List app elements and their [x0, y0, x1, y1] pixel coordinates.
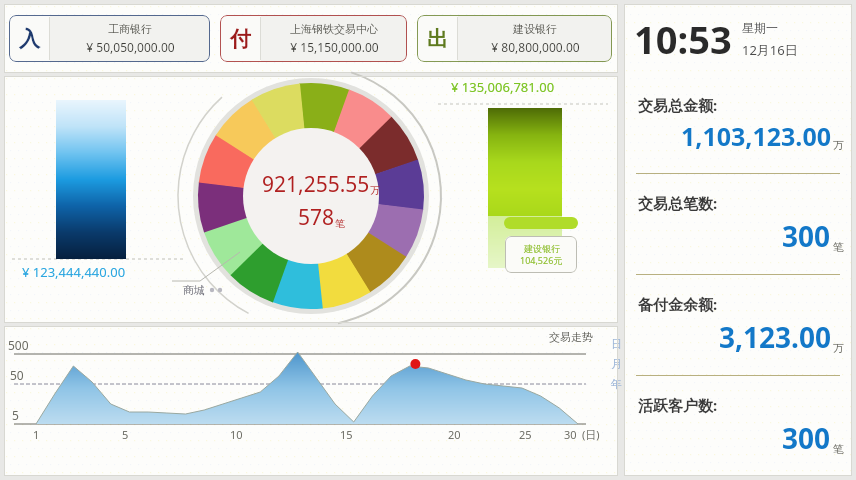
button[interactable]: 建设银行: [505, 236, 577, 273]
staticText: 10:53: [634, 13, 732, 65]
staticText: 3,123.00: [719, 318, 831, 356]
staticText: 笔: [833, 442, 844, 456]
staticText: ¥ 123,444,440.00: [22, 263, 126, 281]
staticText: ¥ 15,150,000.00: [290, 39, 379, 55]
staticText: 付: [230, 26, 251, 52]
button[interactable]: 月: [609, 354, 623, 374]
button[interactable]: 活跃客户数:: [624, 376, 852, 476]
staticText: 10: [230, 427, 243, 442]
button[interactable]: 出: [417, 15, 612, 62]
staticText: 入: [19, 26, 40, 52]
staticText: 50: [10, 367, 24, 383]
staticText: 30: [564, 427, 577, 442]
staticText: 5: [122, 427, 129, 442]
staticText: 500: [8, 337, 29, 353]
staticText: (日): [582, 427, 600, 442]
staticText: 300: [782, 419, 831, 457]
staticText: 交易走势: [549, 330, 593, 344]
staticText: 上海钢铁交易中心: [290, 22, 378, 36]
staticText: 建设银行: [524, 243, 560, 254]
button[interactable]: 交易总笔数:: [624, 174, 852, 274]
button[interactable]: 付: [220, 15, 407, 62]
staticText: 万: [370, 184, 380, 197]
staticText: 活跃客户数:: [638, 395, 718, 415]
staticText: 交易总笔数:: [638, 193, 718, 213]
staticText: 交易总金额:: [638, 95, 718, 115]
staticText: 工商银行: [108, 22, 152, 36]
staticText: 笔: [833, 240, 844, 254]
staticText: 5: [12, 407, 19, 423]
staticText: 万: [833, 341, 844, 355]
staticText: ¥ 50,050,000.00: [86, 39, 175, 55]
staticText: ¥ 80,800,000.00: [491, 39, 580, 55]
button[interactable]: 日: [609, 334, 623, 354]
staticText: 商城: [183, 283, 205, 297]
staticText: 建设银行: [513, 22, 557, 36]
staticText: 备付金余额:: [638, 294, 718, 314]
staticText: 月: [611, 357, 622, 371]
staticText: 15: [340, 427, 353, 442]
staticText: 1,103,123.00: [681, 119, 831, 153]
staticText: 12月16日: [742, 41, 798, 59]
staticText: 1: [33, 427, 40, 442]
staticText: 20: [448, 427, 461, 442]
button[interactable]: 备付金余额:: [624, 275, 852, 375]
button[interactable]: 入: [9, 15, 210, 62]
staticText: 日: [611, 337, 622, 351]
staticText: 星期一: [742, 20, 778, 35]
staticText: 年: [611, 377, 622, 391]
staticText: ¥ 135,006,781.00: [451, 78, 555, 96]
button[interactable]: 年: [609, 374, 623, 394]
staticText: 万: [833, 138, 844, 152]
staticText: 25: [519, 427, 532, 442]
staticText: 出: [427, 26, 448, 52]
staticText: 578: [298, 203, 335, 232]
staticText: 笔: [335, 217, 345, 230]
staticText: 921,255.55: [262, 170, 370, 199]
staticText: 300: [782, 217, 831, 255]
button[interactable]: 交易总金额:: [624, 74, 852, 173]
staticText: 104,526元: [520, 254, 563, 266]
